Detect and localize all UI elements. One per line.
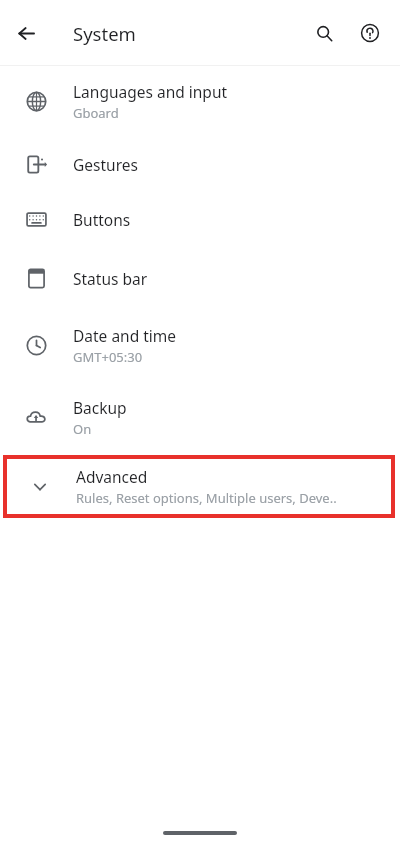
button[interactable]: Gestures [0,136,400,192]
button[interactable]: Backup [0,381,400,453]
staticText: GMT+05:30 [73,348,143,366]
staticText: System [73,21,136,46]
staticText: Gboard [73,104,119,122]
button[interactable]: Buttons [0,192,400,247]
button[interactable]: Status bar [0,247,400,309]
button[interactable]: Languages and input [0,66,400,136]
button[interactable]: Date and time [0,309,400,381]
staticText: Rules, Reset options, Multiple users, De… [76,489,337,507]
button[interactable]: Back [11,18,41,48]
staticText: Advanced [76,466,148,487]
staticText: Status bar [73,268,148,289]
button[interactable]: Help [355,18,385,48]
staticText: Gestures [73,154,138,175]
staticText: Buttons [73,209,131,230]
staticText: Date and time [73,325,177,346]
staticText: On [73,420,92,438]
button[interactable]: Advanced [3,455,395,518]
staticText: Languages and input [73,81,228,102]
button[interactable]: Search [309,18,339,48]
staticText: Backup [73,397,127,418]
